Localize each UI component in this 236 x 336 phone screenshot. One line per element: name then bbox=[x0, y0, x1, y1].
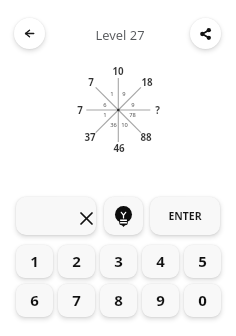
staticText: 46 bbox=[113, 142, 125, 155]
staticText: 36 bbox=[110, 121, 117, 129]
button[interactable]: 4 bbox=[142, 245, 179, 278]
button[interactable]: Hint bbox=[104, 197, 143, 235]
staticText: 10 bbox=[112, 65, 124, 78]
staticText: ? bbox=[155, 104, 160, 117]
button[interactable]: 1 bbox=[16, 245, 53, 278]
staticText: 37 bbox=[84, 131, 96, 144]
button[interactable]: 0 bbox=[184, 284, 221, 317]
button[interactable]: 9 bbox=[142, 284, 179, 317]
staticText: 78 bbox=[129, 111, 136, 119]
staticText: 1 bbox=[110, 90, 114, 98]
staticText: 1 bbox=[103, 111, 107, 119]
staticText: 8 bbox=[114, 290, 123, 310]
staticText: 6 bbox=[30, 290, 39, 310]
staticText: 18 bbox=[141, 76, 153, 89]
staticText: 7 bbox=[72, 290, 81, 310]
button[interactable]: 8 bbox=[100, 284, 137, 317]
button[interactable]: 7 bbox=[58, 284, 95, 317]
staticText: 7 bbox=[88, 76, 94, 89]
staticText: 6 bbox=[103, 101, 107, 109]
button[interactable]: 6 bbox=[16, 284, 53, 317]
staticText: 4 bbox=[156, 251, 165, 271]
staticText: 9 bbox=[131, 101, 135, 109]
staticText: 5 bbox=[198, 251, 207, 271]
button[interactable]: 3 bbox=[100, 245, 137, 278]
staticText: Level 27 bbox=[95, 26, 145, 44]
button[interactable]: 2 bbox=[58, 245, 95, 278]
button[interactable]: Back bbox=[14, 18, 45, 49]
staticText: 88 bbox=[140, 131, 152, 144]
staticText: 10 bbox=[121, 121, 128, 129]
staticText: 9 bbox=[122, 90, 126, 98]
staticText: 7 bbox=[77, 104, 83, 117]
button[interactable]: Share bbox=[190, 18, 221, 49]
staticText: 3 bbox=[114, 251, 123, 271]
button[interactable]: ENTER bbox=[150, 197, 220, 235]
staticText: 2 bbox=[72, 251, 81, 271]
button[interactable]: 5 bbox=[184, 245, 221, 278]
button[interactable]: Delete bbox=[16, 197, 96, 235]
staticText: 0 bbox=[198, 290, 207, 310]
staticText: 9 bbox=[156, 290, 165, 310]
staticText: ENTER bbox=[168, 209, 202, 223]
staticText: 1 bbox=[30, 251, 39, 271]
